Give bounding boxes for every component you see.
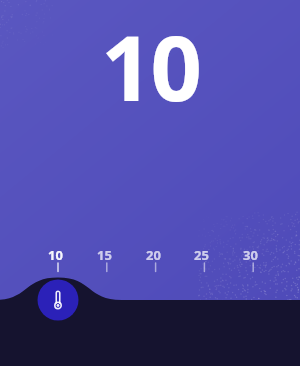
staticText: 10: [101, 5, 200, 128]
button[interactable]: 30: [243, 246, 258, 264]
button[interactable]: 10: [48, 246, 63, 264]
button[interactable]: 15: [97, 246, 112, 264]
button[interactable]: 25: [194, 246, 209, 264]
button[interactable]: Temperature 10 degrees: [0, 0, 300, 366]
button[interactable]: 20: [146, 246, 161, 264]
